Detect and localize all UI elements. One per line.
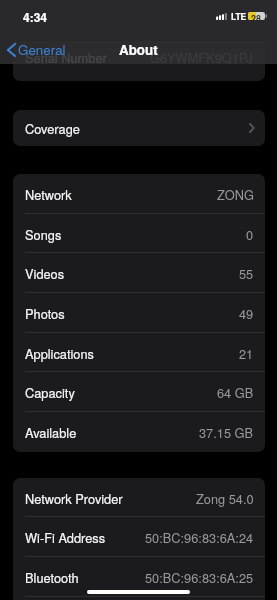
button[interactable]: Songs <box>13 214 265 253</box>
staticText: LTE <box>231 10 247 22</box>
button[interactable]: Capacity <box>13 372 265 412</box>
staticText: Available <box>25 423 77 441</box>
staticText: Zong 54.0 <box>196 489 254 507</box>
button[interactable]: Coverage <box>13 110 265 146</box>
staticText: Videos <box>25 264 65 282</box>
staticText: 28 <box>251 12 262 20</box>
staticText: Applications <box>25 344 94 362</box>
staticText: 49 <box>239 304 254 322</box>
staticText: Coverage <box>25 119 80 137</box>
staticText: 64 GB <box>217 383 254 401</box>
staticText: Wi-Fi Address <box>25 528 106 546</box>
button[interactable]: Available <box>13 412 265 452</box>
staticText: General <box>18 40 66 59</box>
button[interactable]: Applications <box>13 333 265 372</box>
button[interactable]: Bluetooth <box>13 557 265 597</box>
staticText: Capacity <box>25 383 75 401</box>
staticText: About <box>119 40 158 59</box>
staticText: Network Provider <box>25 489 123 507</box>
button[interactable]: Photos <box>13 293 265 333</box>
staticText: 0 <box>246 225 254 243</box>
button[interactable]: Videos <box>13 253 265 293</box>
button[interactable]: Back to General <box>7 40 66 59</box>
button[interactable]: Wi-Fi Address <box>13 517 265 557</box>
staticText: 37.15 GB <box>199 423 254 441</box>
staticText: ZONG <box>217 185 254 203</box>
button[interactable]: Network <box>13 174 265 214</box>
staticText: Songs <box>25 225 62 243</box>
staticText: 4:34 <box>23 8 48 25</box>
staticText: G6YWMFK9Q1PJ <box>150 48 253 66</box>
staticText: 50:BC:96:83:6A:25 <box>145 568 254 586</box>
staticText: 50:BC:96:83:6A:24 <box>145 528 254 546</box>
staticText: Serial Number <box>25 48 107 66</box>
staticText: Photos <box>25 304 65 322</box>
button[interactable]: Network Provider <box>13 478 265 517</box>
staticText: 21 <box>239 344 254 362</box>
staticText: 55 <box>239 264 254 282</box>
staticText: Network <box>25 185 72 203</box>
staticText: Bluetooth <box>25 568 79 586</box>
